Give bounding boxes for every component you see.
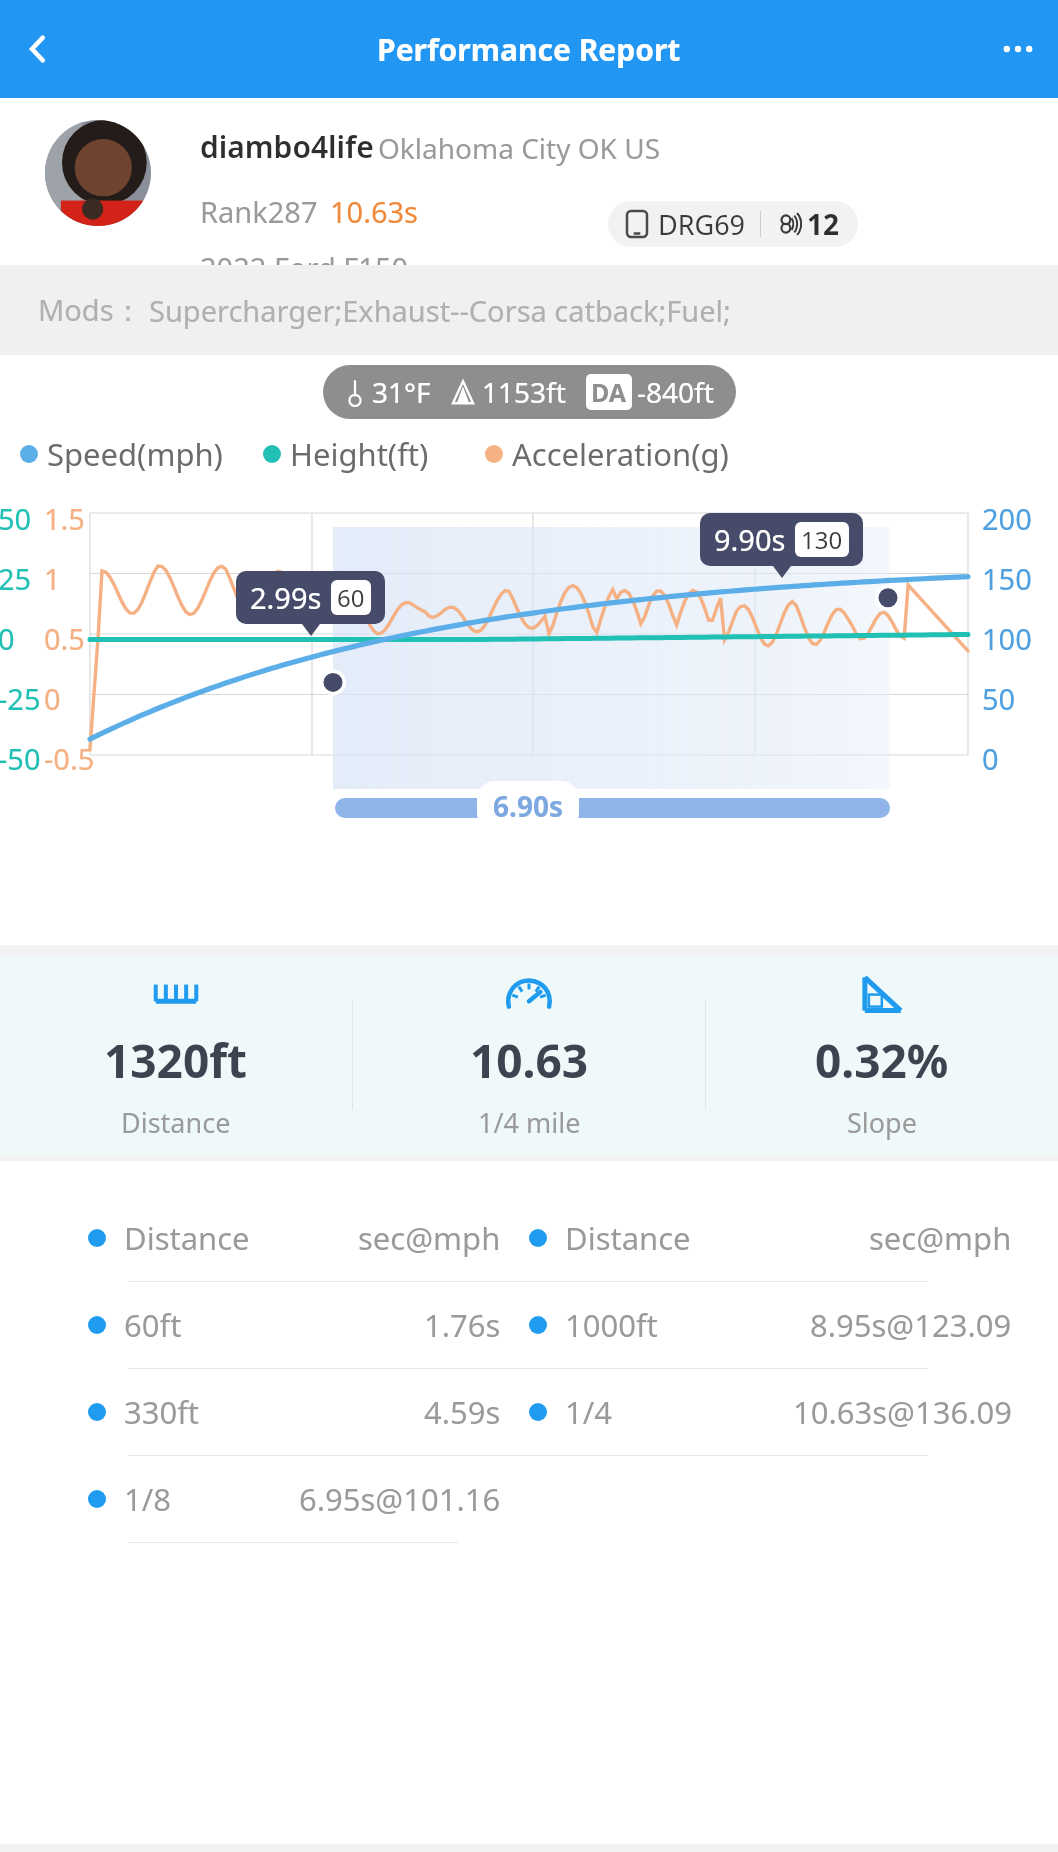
- staticText: Slope: [847, 1104, 917, 1141]
- staticText: Rank287: [200, 192, 318, 231]
- staticText: 0: [44, 679, 61, 718]
- staticText: DRG69: [658, 206, 746, 243]
- staticText: -50: [0, 739, 41, 778]
- staticText: 1.76s: [424, 1304, 501, 1346]
- staticText: 330ft: [124, 1391, 200, 1433]
- staticText: Acceleration(g): [512, 433, 729, 475]
- staticText: 10.63s: [330, 192, 419, 231]
- staticText: Mods：: [38, 290, 143, 330]
- staticText: 130: [801, 523, 843, 556]
- staticText: Distance: [124, 1217, 250, 1259]
- button[interactable]: More options: [988, 19, 1048, 79]
- button[interactable]: Profile photo: [45, 120, 151, 226]
- button[interactable]: 0.32%: [706, 955, 1058, 1155]
- staticText: Speed(mph): [47, 433, 223, 475]
- staticText: 0.32%: [815, 1029, 949, 1092]
- staticText: 0: [982, 739, 999, 778]
- staticText: Height(ft): [290, 433, 429, 475]
- staticText: 1/4 mile: [478, 1104, 581, 1141]
- staticText: 0: [0, 619, 15, 658]
- button[interactable]: Acceleration(g): [485, 433, 729, 475]
- staticText: 50: [0, 499, 32, 538]
- staticText: Oklahoma City OK US: [378, 129, 661, 167]
- button[interactable]: 60ft: [0, 1282, 1058, 1369]
- staticText: -25: [0, 679, 41, 718]
- staticText: 2.99s: [250, 578, 322, 617]
- staticText: 6.90s: [493, 787, 563, 825]
- staticText: 50: [982, 679, 1016, 718]
- staticText: Distance: [121, 1104, 231, 1141]
- button[interactable]: Height(ft): [263, 433, 429, 475]
- staticText: 8.95s@123.09: [810, 1304, 1012, 1346]
- staticText: Supercharger;Exhaust--Corsa catback;Fuel…: [149, 291, 731, 330]
- staticText: 10.63s@136.09: [793, 1391, 1012, 1433]
- button[interactable]: 330ft: [0, 1369, 1058, 1456]
- staticText: sec@mph: [869, 1217, 1012, 1259]
- button[interactable]: Mods：: [0, 265, 1058, 355]
- button[interactable]: Back: [8, 19, 68, 79]
- button[interactable]: 31°F: [323, 365, 736, 419]
- staticText: diambo4life: [200, 126, 374, 167]
- staticText: 100: [982, 619, 1032, 658]
- staticText: Distance: [565, 1217, 691, 1259]
- staticText: DA: [591, 375, 627, 409]
- staticText: -840ft: [637, 373, 714, 411]
- staticText: 1000ft: [565, 1304, 658, 1346]
- button[interactable]: DRG69: [608, 201, 858, 247]
- staticText: 200: [982, 499, 1032, 538]
- staticText: Performance Report: [377, 29, 681, 70]
- staticText: 2022 Ford F150: [200, 248, 409, 287]
- staticText: 31°F: [372, 373, 431, 411]
- button[interactable]: 1/8: [0, 1456, 1058, 1543]
- staticText: 1.5: [44, 499, 85, 538]
- staticText: 10.63: [470, 1029, 589, 1092]
- staticText: 12: [807, 205, 840, 243]
- button[interactable]: Speed(mph): [20, 433, 223, 475]
- staticText: 6.95s@101.16: [299, 1478, 501, 1520]
- staticText: 1153ft: [482, 373, 566, 411]
- staticText: 1/8: [124, 1478, 171, 1520]
- button[interactable]: Distance: [0, 1195, 1058, 1282]
- staticText: 1320ft: [104, 1029, 248, 1092]
- staticText: -0.5: [44, 739, 95, 778]
- staticText: 150: [982, 559, 1032, 598]
- staticText: 1: [44, 559, 61, 598]
- staticText: 60: [337, 581, 365, 614]
- button[interactable]: 10.63: [353, 955, 705, 1155]
- button[interactable]: 1320ft: [0, 955, 352, 1155]
- staticText: 1/4: [565, 1391, 612, 1433]
- button[interactable]: 6.90s: [477, 781, 579, 831]
- staticText: 9.90s: [714, 520, 786, 559]
- staticText: 25: [0, 559, 32, 598]
- staticText: 60ft: [124, 1304, 182, 1346]
- staticText: 0.5: [44, 619, 85, 658]
- staticText: sec@mph: [358, 1217, 501, 1259]
- staticText: 4.59s: [424, 1391, 501, 1433]
